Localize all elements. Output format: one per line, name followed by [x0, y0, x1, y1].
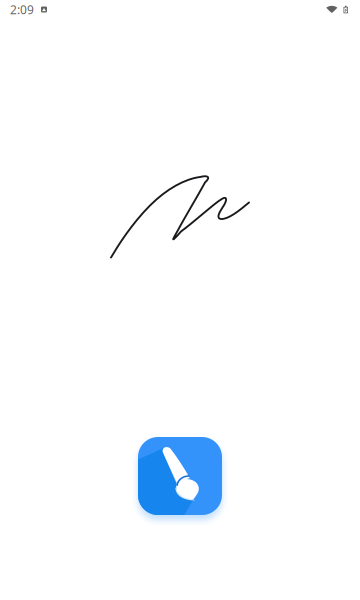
- button[interactable]: Open app: [138, 437, 222, 515]
- staticText: 2:09: [10, 1, 34, 17]
